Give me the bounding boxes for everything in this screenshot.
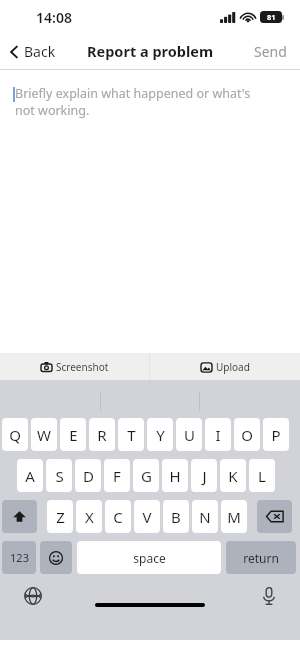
button[interactable]: D (75, 459, 101, 492)
staticText: Briefly explain what happened or what's … (15, 85, 251, 118)
button[interactable]: space (77, 541, 221, 574)
staticText: H (169, 466, 181, 486)
staticText: Back (24, 42, 56, 61)
button[interactable]: H (162, 459, 188, 492)
staticText: O (241, 425, 253, 445)
staticText: W (37, 425, 51, 445)
button[interactable]: I (205, 418, 231, 451)
button[interactable]: Q (2, 418, 28, 451)
button[interactable]: M (221, 500, 247, 533)
staticText: E (69, 425, 78, 445)
staticText: X (85, 507, 94, 527)
button[interactable]: C (105, 500, 131, 533)
staticText: space (133, 550, 166, 566)
staticText: Screenshot (56, 360, 109, 374)
button[interactable]: Upload (150, 353, 300, 380)
button[interactable]: F (104, 459, 130, 492)
staticText: A (25, 466, 35, 486)
button[interactable]: X (76, 500, 102, 533)
button[interactable]: Screenshot (0, 353, 149, 380)
button[interactable]: A (17, 459, 43, 492)
button[interactable]: W (31, 418, 57, 451)
button[interactable]: L (249, 459, 275, 492)
staticText: Y (156, 425, 165, 445)
button[interactable]: R (89, 418, 115, 451)
staticText: U (184, 425, 195, 445)
staticText: Upload (216, 360, 250, 374)
staticText: M (227, 507, 241, 527)
button[interactable]: P (263, 418, 289, 451)
staticText: D (83, 466, 94, 486)
button[interactable]: O (234, 418, 260, 451)
staticText: return (243, 550, 279, 566)
staticText: K (228, 466, 238, 486)
staticText: N (199, 507, 211, 527)
staticText: P (271, 425, 281, 445)
button[interactable]: J (191, 459, 217, 492)
staticText: S (55, 466, 64, 486)
staticText: Report a problem (87, 41, 214, 61)
button[interactable]: S (46, 459, 72, 492)
staticText: 81 (267, 12, 276, 22)
button[interactable]: T (118, 418, 144, 451)
staticText: V (142, 507, 152, 527)
button[interactable]: return (226, 541, 296, 574)
button[interactable]: G (133, 459, 159, 492)
button[interactable]: Dictate (262, 587, 276, 605)
staticText: R (97, 425, 107, 445)
staticText: J (202, 466, 207, 486)
button[interactable]: Shift (2, 500, 37, 533)
button[interactable]: Emoji (40, 541, 72, 574)
button[interactable]: Backspace (257, 500, 292, 533)
staticText: L (258, 466, 266, 486)
staticText: 123 (10, 550, 29, 565)
staticText: 14:08 (36, 8, 72, 27)
staticText: Send (254, 42, 287, 61)
button[interactable]: Y (147, 418, 173, 451)
button[interactable]: Change keyboard (24, 587, 42, 605)
button[interactable]: Z (47, 500, 73, 533)
staticText: F (113, 466, 121, 486)
button[interactable]: V (134, 500, 160, 533)
button[interactable]: K (220, 459, 246, 492)
staticText: I (215, 425, 221, 445)
button[interactable]: Back (10, 42, 56, 61)
staticText: G (141, 466, 152, 486)
button[interactable]: U (176, 418, 202, 451)
button[interactable]: B (163, 500, 189, 533)
staticText: B (171, 507, 181, 527)
staticText: T (127, 425, 136, 445)
staticText: C (113, 507, 123, 527)
button[interactable]: N (192, 500, 218, 533)
staticText: Z (56, 507, 65, 527)
button[interactable]: Briefly explain what happened or what's … (0, 70, 300, 353)
button[interactable]: Send (254, 42, 287, 61)
button[interactable]: 123 (2, 541, 36, 574)
staticText: Q (9, 425, 21, 445)
button[interactable]: E (60, 418, 86, 451)
